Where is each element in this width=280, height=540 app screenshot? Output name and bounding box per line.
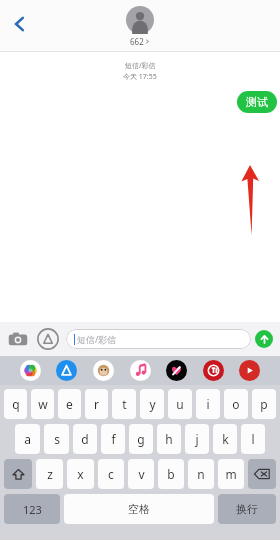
button[interactable]: i bbox=[196, 389, 220, 419]
staticText: 今天 17:55 bbox=[123, 72, 157, 82]
staticText: g bbox=[137, 431, 145, 447]
button[interactable]: t bbox=[112, 389, 136, 419]
staticText: r bbox=[94, 396, 99, 412]
staticText: t bbox=[122, 396, 127, 412]
button[interactable]: 空格 bbox=[64, 494, 214, 524]
button[interactable]: a bbox=[15, 424, 40, 454]
staticText: 短信/彩信 bbox=[125, 61, 156, 71]
staticText: n bbox=[197, 466, 205, 482]
button[interactable]: Back bbox=[6, 10, 34, 38]
staticText: w bbox=[38, 396, 48, 412]
button[interactable]: App 1 bbox=[56, 360, 77, 381]
button[interactable]: g bbox=[129, 424, 153, 454]
button[interactable]: o bbox=[224, 389, 248, 419]
button[interactable]: j bbox=[185, 424, 209, 454]
staticText: s bbox=[54, 431, 60, 447]
staticText: b bbox=[167, 466, 175, 482]
button[interactable]: y bbox=[140, 389, 164, 419]
staticText: d bbox=[81, 431, 89, 447]
staticText: z bbox=[47, 466, 53, 482]
staticText: e bbox=[66, 396, 73, 412]
button[interactable]: f bbox=[101, 424, 125, 454]
button[interactable]: z bbox=[36, 459, 63, 489]
staticText: o bbox=[232, 396, 240, 412]
staticText: 换行 bbox=[236, 502, 258, 516]
button[interactable]: App 6 bbox=[239, 360, 260, 381]
staticText: c bbox=[108, 466, 114, 482]
staticText: q bbox=[12, 396, 20, 412]
button[interactable]: Send bbox=[255, 330, 273, 348]
button[interactable]: b bbox=[158, 459, 184, 489]
button[interactable]: r bbox=[85, 389, 108, 419]
button[interactable]: App Store bbox=[37, 328, 59, 350]
button[interactable]: l bbox=[241, 424, 265, 454]
button[interactable]: n bbox=[188, 459, 214, 489]
staticText: f bbox=[111, 431, 116, 447]
staticText: l bbox=[251, 431, 255, 447]
button[interactable]: h bbox=[157, 424, 181, 454]
staticText: y bbox=[149, 396, 156, 412]
button[interactable]: d bbox=[73, 424, 97, 454]
button[interactable]: App 5 bbox=[203, 360, 224, 381]
button[interactable]: App 0 bbox=[20, 360, 41, 381]
button[interactable]: App 2 bbox=[93, 360, 114, 381]
staticText: 662 bbox=[130, 36, 144, 47]
staticText: p bbox=[260, 396, 268, 412]
staticText: 短信/彩信 bbox=[77, 333, 117, 345]
button[interactable]: App 3 bbox=[130, 360, 151, 381]
staticText: 123 bbox=[23, 502, 42, 517]
staticText: 测试 bbox=[246, 95, 268, 109]
button[interactable]: c bbox=[98, 459, 124, 489]
staticText: i bbox=[206, 396, 210, 412]
staticText: u bbox=[176, 396, 184, 412]
button[interactable]: w bbox=[31, 389, 54, 419]
button[interactable]: 662 bbox=[126, 6, 154, 47]
staticText: m bbox=[225, 466, 237, 482]
button[interactable]: Camera bbox=[7, 328, 29, 350]
button[interactable]: x bbox=[67, 459, 94, 489]
button[interactable]: k bbox=[213, 424, 237, 454]
button[interactable]: Backspace bbox=[248, 459, 276, 489]
button[interactable]: u bbox=[168, 389, 192, 419]
staticText: 空格 bbox=[128, 502, 150, 516]
button[interactable]: m bbox=[218, 459, 244, 489]
button[interactable]: s bbox=[44, 424, 69, 454]
staticText: h bbox=[165, 431, 173, 447]
staticText: x bbox=[77, 466, 84, 482]
staticText: k bbox=[222, 431, 229, 447]
button[interactable]: e bbox=[58, 389, 81, 419]
button[interactable]: 换行 bbox=[218, 494, 276, 524]
button[interactable]: v bbox=[128, 459, 154, 489]
button[interactable]: Shift bbox=[4, 459, 32, 489]
staticText: a bbox=[24, 431, 31, 447]
staticText: v bbox=[138, 466, 145, 482]
button[interactable]: q bbox=[4, 389, 27, 419]
staticText: j bbox=[195, 431, 199, 447]
button[interactable]: 短信/彩信 bbox=[66, 329, 251, 349]
button[interactable]: 123 bbox=[4, 494, 60, 524]
button[interactable]: 测试 bbox=[237, 91, 277, 113]
button[interactable]: App 4 bbox=[166, 360, 187, 381]
button[interactable]: p bbox=[252, 389, 276, 419]
